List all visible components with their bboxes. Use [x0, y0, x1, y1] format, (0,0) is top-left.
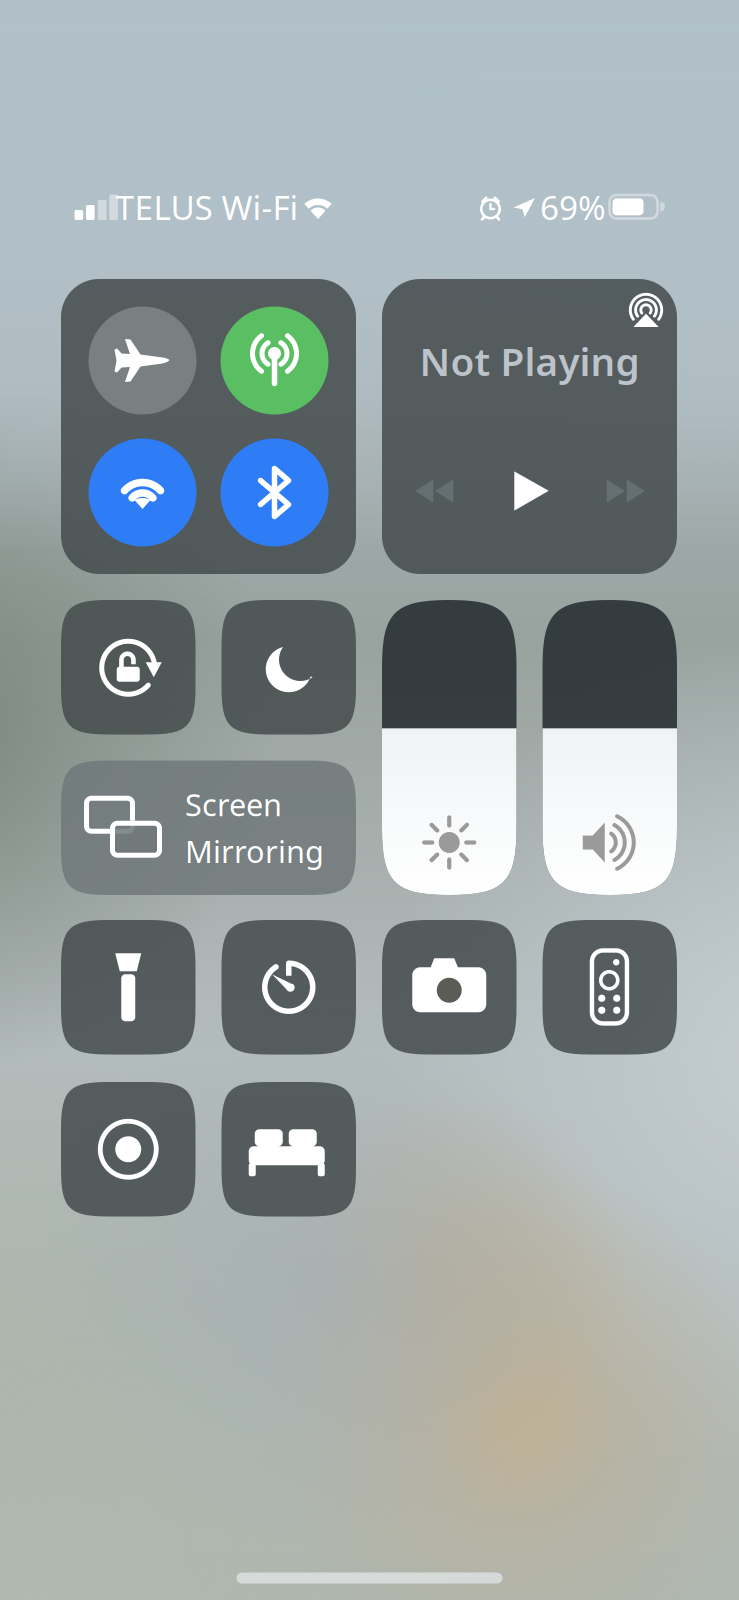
button[interactable]: Screen Recording — [61, 1082, 195, 1216]
button[interactable]: Cellular Data — [220, 306, 328, 414]
staticText: Screen — [185, 784, 282, 825]
button[interactable]: Camera — [382, 920, 516, 1054]
button[interactable]: Airplane Mode — [88, 306, 196, 414]
button[interactable]: Previous Track — [403, 463, 465, 519]
staticText: Mirroring — [185, 831, 324, 871]
button[interactable]: Play — [500, 463, 562, 519]
button[interactable]: Brightness — [382, 600, 516, 895]
button[interactable]: Screen — [61, 760, 356, 895]
button[interactable]: Do Not Disturb — [221, 600, 356, 734]
staticText: TELUS Wi-Fi — [115, 185, 298, 229]
button[interactable]: Apple TV Remote — [542, 920, 677, 1054]
staticText: 69% — [540, 185, 606, 229]
button[interactable]: Flashlight — [61, 920, 195, 1054]
button[interactable]: Timer — [221, 920, 356, 1054]
button[interactable]: Next Track — [595, 463, 657, 519]
button[interactable]: Volume — [542, 600, 677, 895]
staticText: Not Playing — [419, 335, 639, 387]
button[interactable]: Wi-Fi — [88, 438, 196, 546]
button[interactable]: Rotation Lock — [61, 600, 195, 734]
button[interactable]: Sleep Mode — [221, 1082, 356, 1216]
button[interactable]: AirPlay — [619, 283, 673, 337]
button[interactable]: Bluetooth — [220, 438, 328, 546]
